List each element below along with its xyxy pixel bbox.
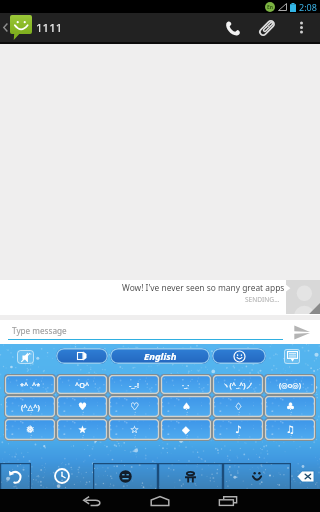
button[interactable]: ♡	[108, 395, 160, 418]
staticText: English	[144, 350, 177, 363]
staticText: ★	[78, 424, 87, 436]
staticText: ♣	[286, 401, 295, 413]
staticText: 1111	[36, 20, 63, 36]
button[interactable]	[56, 348, 108, 364]
button[interactable]: Sound off	[17, 350, 34, 364]
button[interactable]: Hide keyboard	[284, 349, 300, 364]
button[interactable]: ·_·	[160, 374, 212, 395]
button[interactable]: Emoticons	[93, 463, 158, 489]
button[interactable]: Recently used	[31, 463, 93, 489]
button[interactable]: Navigate up	[0, 13, 63, 42]
staticText: ^O^	[75, 380, 90, 390]
staticText: ·_·	[182, 380, 190, 390]
staticText: En	[267, 4, 274, 11]
staticText: (^△^)	[21, 402, 40, 412]
staticText: ♪	[235, 424, 242, 436]
staticText: ♡	[130, 401, 139, 413]
button[interactable]: (◎o◎)	[264, 374, 316, 395]
staticText: *^ ^*	[20, 380, 41, 390]
button[interactable]: English	[110, 348, 210, 364]
button[interactable]: ♠	[160, 395, 212, 418]
button[interactable]: *^ ^*	[4, 374, 56, 395]
button[interactable]: Recent apps	[198, 489, 258, 512]
button[interactable]: Home	[130, 489, 190, 512]
button[interactable]: ^O^	[56, 374, 108, 395]
button[interactable]: ♫	[264, 418, 316, 441]
staticText: ♥	[78, 401, 87, 413]
staticText: (◎o◎)	[279, 380, 302, 390]
button[interactable]: Call	[216, 13, 250, 42]
button[interactable]: ♣	[264, 395, 316, 418]
staticText: ❅	[26, 424, 35, 436]
button[interactable]: ♪	[212, 418, 264, 441]
staticText: Wow! I've never seen so many great apps	[122, 282, 285, 293]
button[interactable]: Delete	[291, 463, 320, 489]
button[interactable]: Smileys	[223, 463, 291, 489]
button[interactable]: ☆	[108, 418, 160, 441]
staticText: ヽ(^_^)ノ	[222, 380, 254, 390]
other: Navigate up	[3, 23, 8, 32]
staticText: ♢	[234, 401, 243, 413]
button[interactable]: Send	[284, 320, 320, 344]
button[interactable]: More options	[283, 13, 320, 42]
button[interactable]	[212, 348, 266, 364]
staticText: 2:08	[299, 1, 317, 13]
staticText: Type message	[12, 325, 67, 336]
button[interactable]: ❅	[4, 418, 56, 441]
button[interactable]: ★	[56, 418, 108, 441]
staticText: ◆	[182, 424, 190, 436]
staticText: ☆	[130, 424, 139, 436]
staticText: -_-!	[129, 380, 139, 390]
staticText: ♠	[182, 401, 191, 413]
staticText: SENDING…	[245, 295, 280, 304]
button[interactable]: (^△^)	[4, 395, 56, 418]
button[interactable]: Korean	[158, 463, 223, 489]
button[interactable]: ♢	[212, 395, 264, 418]
button[interactable]: ヽ(^_^)ノ	[212, 374, 264, 395]
button[interactable]: Back	[62, 489, 122, 512]
staticText: ♫	[286, 424, 295, 436]
button[interactable]: -_-!	[108, 374, 160, 395]
button[interactable]: ♥	[56, 395, 108, 418]
button[interactable]: ◆	[160, 418, 212, 441]
button[interactable]: Undo	[0, 463, 31, 489]
button[interactable]: Attach	[250, 13, 283, 42]
